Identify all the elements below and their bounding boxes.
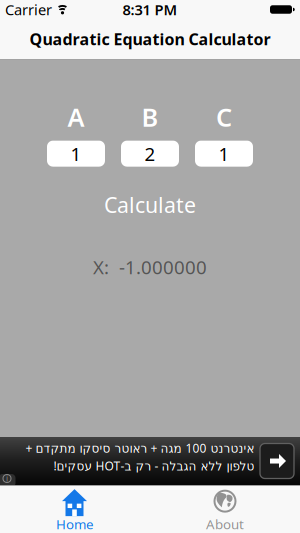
staticText: Home (56, 515, 94, 533)
button[interactable]: Advertisement (0, 437, 300, 485)
button[interactable]: About (150, 484, 300, 533)
staticText: Quadratic Equation Calculator (29, 28, 270, 50)
staticText: 1 (70, 141, 81, 166)
staticText: 8:31 PM (122, 0, 177, 19)
button[interactable]: Home (0, 484, 150, 533)
button[interactable]: Coefficient A (47, 141, 105, 167)
staticText: B (141, 100, 158, 134)
button[interactable]: Calculate (95, 190, 205, 220)
staticText: 2 (144, 141, 155, 166)
staticText: A (67, 100, 84, 134)
staticText: X: -1.000000 (93, 255, 207, 279)
staticText: טלפון ללא הגבלה - רק ב-HOT עסקים! (53, 458, 254, 474)
button[interactable]: Coefficient B (121, 141, 179, 167)
button[interactable]: Coefficient C (195, 141, 253, 167)
staticText: i (6, 473, 8, 484)
staticText: Calculate (104, 190, 196, 219)
staticText: Carrier (5, 0, 52, 19)
staticText: אינטרנט 100 מגה + ראוטר סיסקו מתקדם + (25, 440, 254, 456)
staticText: About (206, 515, 244, 533)
staticText: C (216, 100, 232, 134)
staticText: 1 (218, 141, 229, 166)
